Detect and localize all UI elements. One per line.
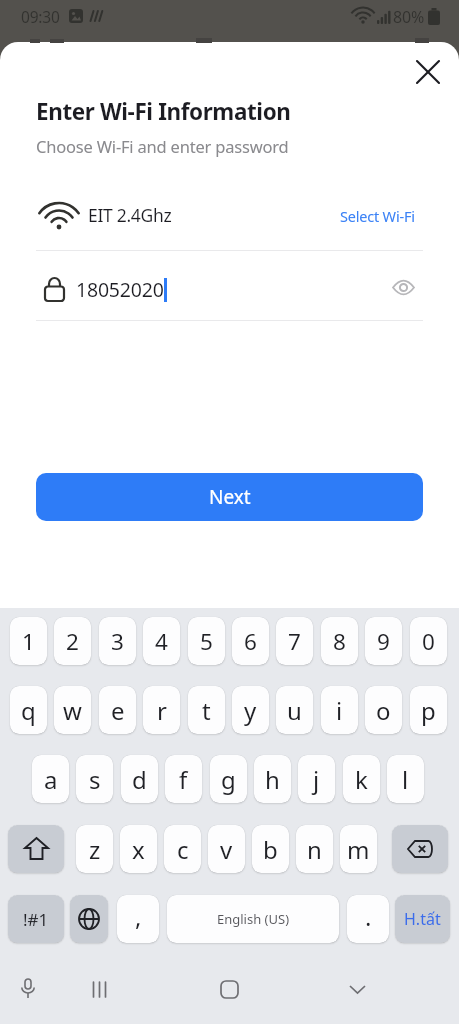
staticText: u xyxy=(287,694,302,727)
button[interactable]: English (US) xyxy=(167,895,339,943)
staticText: 9 xyxy=(377,626,390,657)
staticText: o xyxy=(376,694,391,727)
button[interactable]: 6 xyxy=(232,617,269,665)
button[interactable]: Select Wi-Fi xyxy=(340,206,415,226)
staticText: r xyxy=(157,694,167,727)
button[interactable]: 4 xyxy=(143,617,180,665)
button[interactable] xyxy=(8,969,48,1009)
staticText: z xyxy=(89,833,101,866)
staticText: English (US) xyxy=(217,910,290,928)
button[interactable]: a xyxy=(32,755,69,803)
staticText: 4 xyxy=(155,626,168,657)
staticText: 09:30 xyxy=(21,6,60,27)
button[interactable] xyxy=(392,825,448,873)
button[interactable]: 7 xyxy=(276,617,313,665)
staticText: n xyxy=(307,833,322,866)
button[interactable]: o xyxy=(365,686,402,734)
button[interactable]: 1 xyxy=(10,617,47,665)
staticText: t xyxy=(202,694,211,727)
staticText: 3 xyxy=(111,626,124,657)
button[interactable]: v xyxy=(208,825,245,873)
staticText: , xyxy=(135,900,142,933)
button[interactable]: 3 xyxy=(99,617,136,665)
staticText: j xyxy=(313,763,320,796)
button[interactable]: k xyxy=(343,755,380,803)
button[interactable]: q xyxy=(10,686,47,734)
button[interactable]: 9 xyxy=(365,617,402,665)
button[interactable]: Next xyxy=(36,473,423,521)
button[interactable] xyxy=(8,825,64,873)
button[interactable]: y xyxy=(232,686,269,734)
staticText: 6 xyxy=(244,626,257,657)
staticText: 5 xyxy=(200,626,213,657)
staticText: . xyxy=(365,900,372,933)
button[interactable]: n xyxy=(296,825,333,873)
staticText: l xyxy=(402,763,409,796)
button[interactable]: EIT 2.4Ghz xyxy=(36,190,423,242)
button[interactable]: , xyxy=(117,895,159,943)
staticText: !#1 xyxy=(23,908,49,931)
staticText: p xyxy=(421,694,436,727)
button[interactable] xyxy=(80,969,120,1009)
staticText: q xyxy=(21,694,36,727)
staticText: m xyxy=(347,833,370,866)
staticText: h xyxy=(265,763,280,796)
staticText: k xyxy=(355,763,368,796)
staticText: d xyxy=(132,763,147,796)
staticText: x xyxy=(132,833,145,866)
button[interactable]: m xyxy=(340,825,377,873)
button[interactable]: 0 xyxy=(410,617,447,665)
button[interactable] xyxy=(70,895,108,943)
button[interactable]: x xyxy=(120,825,157,873)
button[interactable]: l xyxy=(387,755,424,803)
staticText: Choose Wi-Fi and enter password xyxy=(36,135,289,157)
button[interactable]: d xyxy=(121,755,158,803)
staticText: g xyxy=(221,763,236,796)
button[interactable]: h xyxy=(254,755,291,803)
staticText: 1 xyxy=(22,626,35,657)
button[interactable]: s xyxy=(76,755,113,803)
button[interactable]: j xyxy=(298,755,335,803)
staticText: 2 xyxy=(66,626,79,657)
button[interactable]: c xyxy=(164,825,201,873)
button[interactable]: !#1 xyxy=(8,895,64,943)
staticText: e xyxy=(111,694,125,727)
staticText: EIT 2.4Ghz xyxy=(88,203,172,227)
staticText: 7 xyxy=(288,626,301,657)
staticText: y xyxy=(244,694,257,727)
button[interactable] xyxy=(404,48,452,96)
staticText: i xyxy=(336,694,343,727)
button[interactable]: p xyxy=(410,686,447,734)
staticText: a xyxy=(44,763,58,796)
staticText: Enter Wi-Fi Information xyxy=(36,96,291,127)
staticText: H.tất xyxy=(404,908,441,930)
button[interactable]: 5 xyxy=(188,617,225,665)
button[interactable]: 8 xyxy=(321,617,358,665)
staticText: w xyxy=(63,694,82,727)
button[interactable]: z xyxy=(76,825,113,873)
button[interactable]: i xyxy=(321,686,358,734)
staticText: b xyxy=(263,833,278,866)
button[interactable]: 2 xyxy=(54,617,91,665)
staticText: 0 xyxy=(422,626,435,657)
button[interactable]: e xyxy=(99,686,136,734)
staticText: 80% xyxy=(393,6,425,28)
staticText: Next xyxy=(209,484,251,510)
button[interactable]: g xyxy=(210,755,247,803)
button[interactable]: u xyxy=(276,686,313,734)
staticText: s xyxy=(89,763,101,796)
button[interactable]: 18052020 xyxy=(36,264,423,316)
button[interactable] xyxy=(209,969,249,1009)
button[interactable]: f xyxy=(165,755,202,803)
button[interactable]: b xyxy=(252,825,289,873)
staticText: 8 xyxy=(333,626,346,657)
button[interactable]: w xyxy=(54,686,91,734)
staticText: v xyxy=(220,833,233,866)
staticText: 18052020 xyxy=(76,276,164,303)
button[interactable]: . xyxy=(347,895,389,943)
button[interactable]: r xyxy=(143,686,180,734)
button[interactable]: H.tất xyxy=(395,895,450,943)
button[interactable] xyxy=(337,969,377,1009)
staticText: f xyxy=(179,763,188,796)
button[interactable]: t xyxy=(188,686,225,734)
